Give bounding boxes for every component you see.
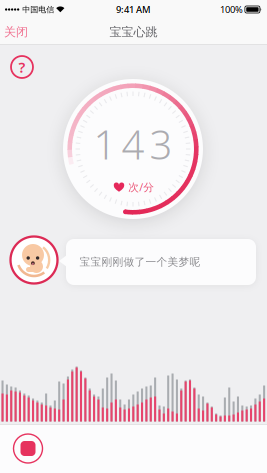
staticText: 关闭 — [4, 25, 28, 39]
staticText: 宝宝刚刚做了一个美梦呢 — [79, 255, 200, 268]
staticText: 中国电信 — [22, 5, 54, 14]
button[interactable]: 停止 — [10, 430, 46, 466]
staticText: ? — [18, 57, 25, 77]
button[interactable]: 帮助 — [8, 53, 36, 81]
staticText: 9:41 AM — [116, 3, 151, 16]
staticText: 次/分 — [128, 180, 154, 194]
staticText: 100% — [220, 3, 243, 16]
button[interactable]: 关闭 — [0, 25, 28, 39]
staticText: 宝宝心跳 — [109, 25, 157, 39]
staticText: 143 — [93, 117, 172, 170]
